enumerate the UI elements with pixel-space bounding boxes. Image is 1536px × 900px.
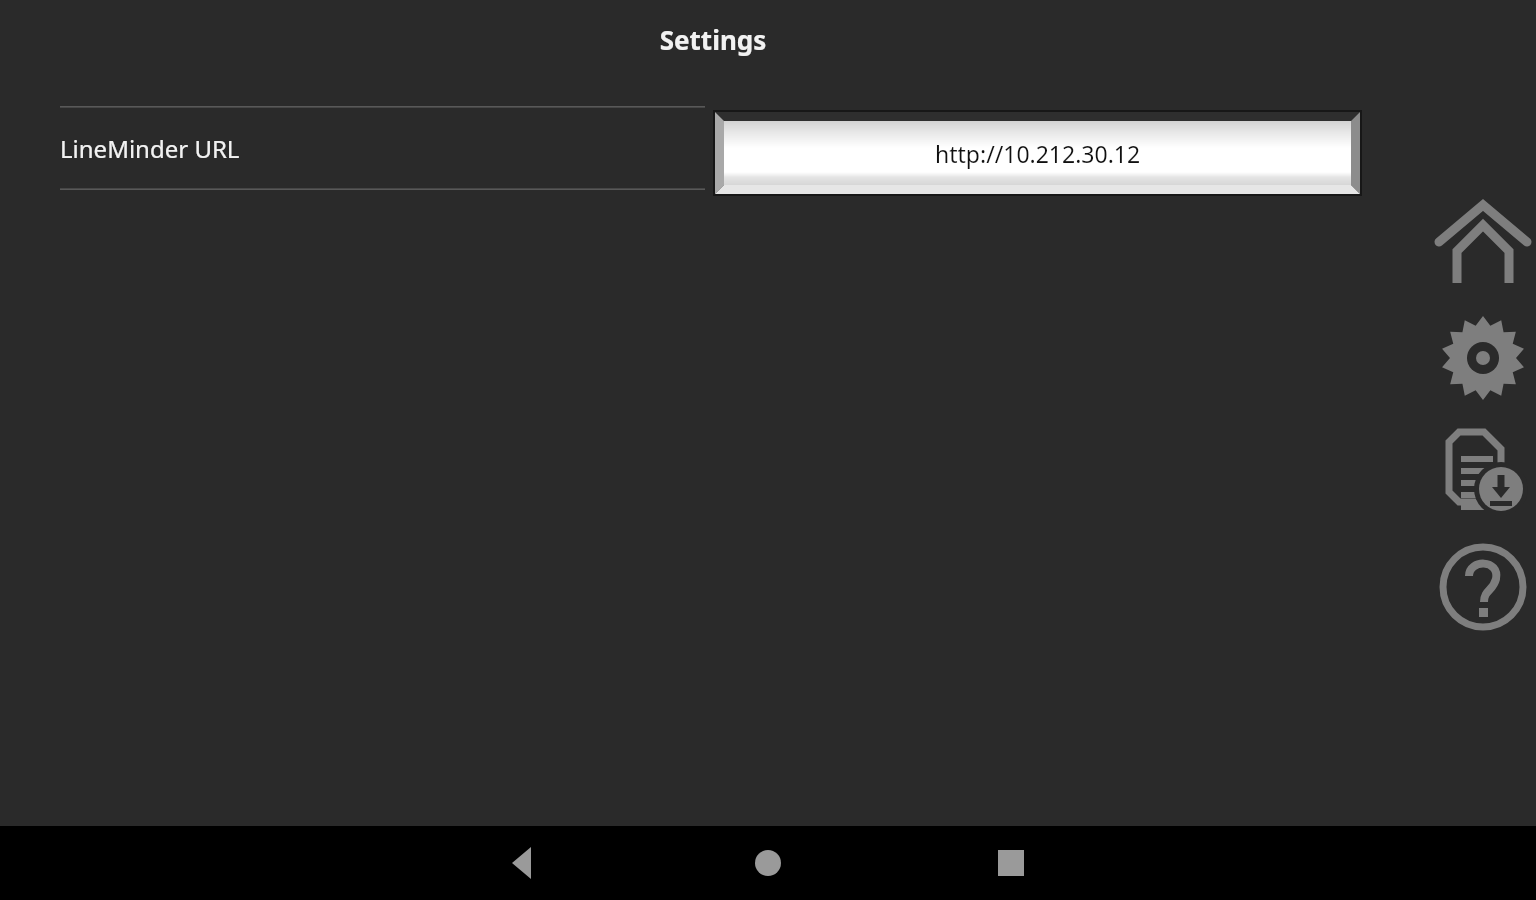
button[interactable]: LineMinder URL (60, 106, 705, 190)
button[interactable]: Recent apps (971, 843, 1051, 883)
staticText: Settings (0, 22, 1426, 57)
staticText: LineMinder URL (60, 132, 240, 165)
button[interactable]: Home (1435, 197, 1531, 293)
button[interactable]: Settings (1435, 310, 1531, 406)
staticText: http://10.212.30.12 (935, 138, 1141, 169)
button[interactable]: http://10.212.30.12 (713, 110, 1362, 196)
button[interactable]: Home (728, 843, 808, 883)
button[interactable]: Help (1435, 539, 1531, 635)
button[interactable]: Download document (1435, 422, 1531, 518)
button[interactable]: Back (482, 843, 562, 883)
